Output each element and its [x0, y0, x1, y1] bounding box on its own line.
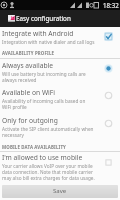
button[interactable]: Unselected option: [101, 116, 115, 130]
staticText: Will use battery but incoming calls are: [2, 71, 86, 77]
staticText: Save: [53, 187, 67, 195]
button[interactable]: Save: [2, 185, 118, 198]
staticText: WiFi profile: [2, 104, 27, 110]
button[interactable]: Selected option: [101, 61, 115, 75]
staticText: Integration with native dialer and call …: [2, 39, 95, 45]
button[interactable]: Checked option: [101, 29, 115, 43]
staticText: Availability of incoming calls based on: [2, 98, 86, 104]
staticText: may also bill extra charges for data usa…: [2, 175, 95, 181]
staticText: always received: [2, 77, 37, 83]
staticText: Your carrier allows VoIP over your mobil…: [2, 163, 93, 169]
staticText: Easy configuration: [16, 14, 71, 23]
staticText: Available on WiFi: [2, 88, 56, 97]
staticText: I'm allowed to use mobile: [2, 153, 83, 162]
button[interactable]: Integrate with Android: [0, 29, 120, 47]
staticText: 18:32: [103, 1, 119, 9]
staticText: AVAILABILITY PROFILE: [2, 50, 55, 56]
staticText: necessary: [2, 132, 24, 138]
button[interactable]: Only for outgoing: [0, 116, 120, 140]
button[interactable]: Available on WiFi: [0, 88, 120, 112]
button[interactable]: I'm allowed to use mobile: [0, 153, 120, 183]
staticText: data connection. Note that mobile carrie…: [2, 169, 93, 175]
staticText: Only for outgoing: [2, 116, 58, 125]
button[interactable]: Unselected option: [101, 88, 115, 102]
staticText: Always available: [2, 61, 54, 70]
staticText: Activate the SIP client automatically wh…: [2, 126, 94, 132]
button[interactable]: Always available: [0, 61, 120, 85]
staticText: Integrate with Android: [2, 29, 74, 38]
staticText: MOBILE DATA AVAILABILITY: [2, 144, 67, 150]
button[interactable]: Unchecked option: [101, 155, 115, 169]
